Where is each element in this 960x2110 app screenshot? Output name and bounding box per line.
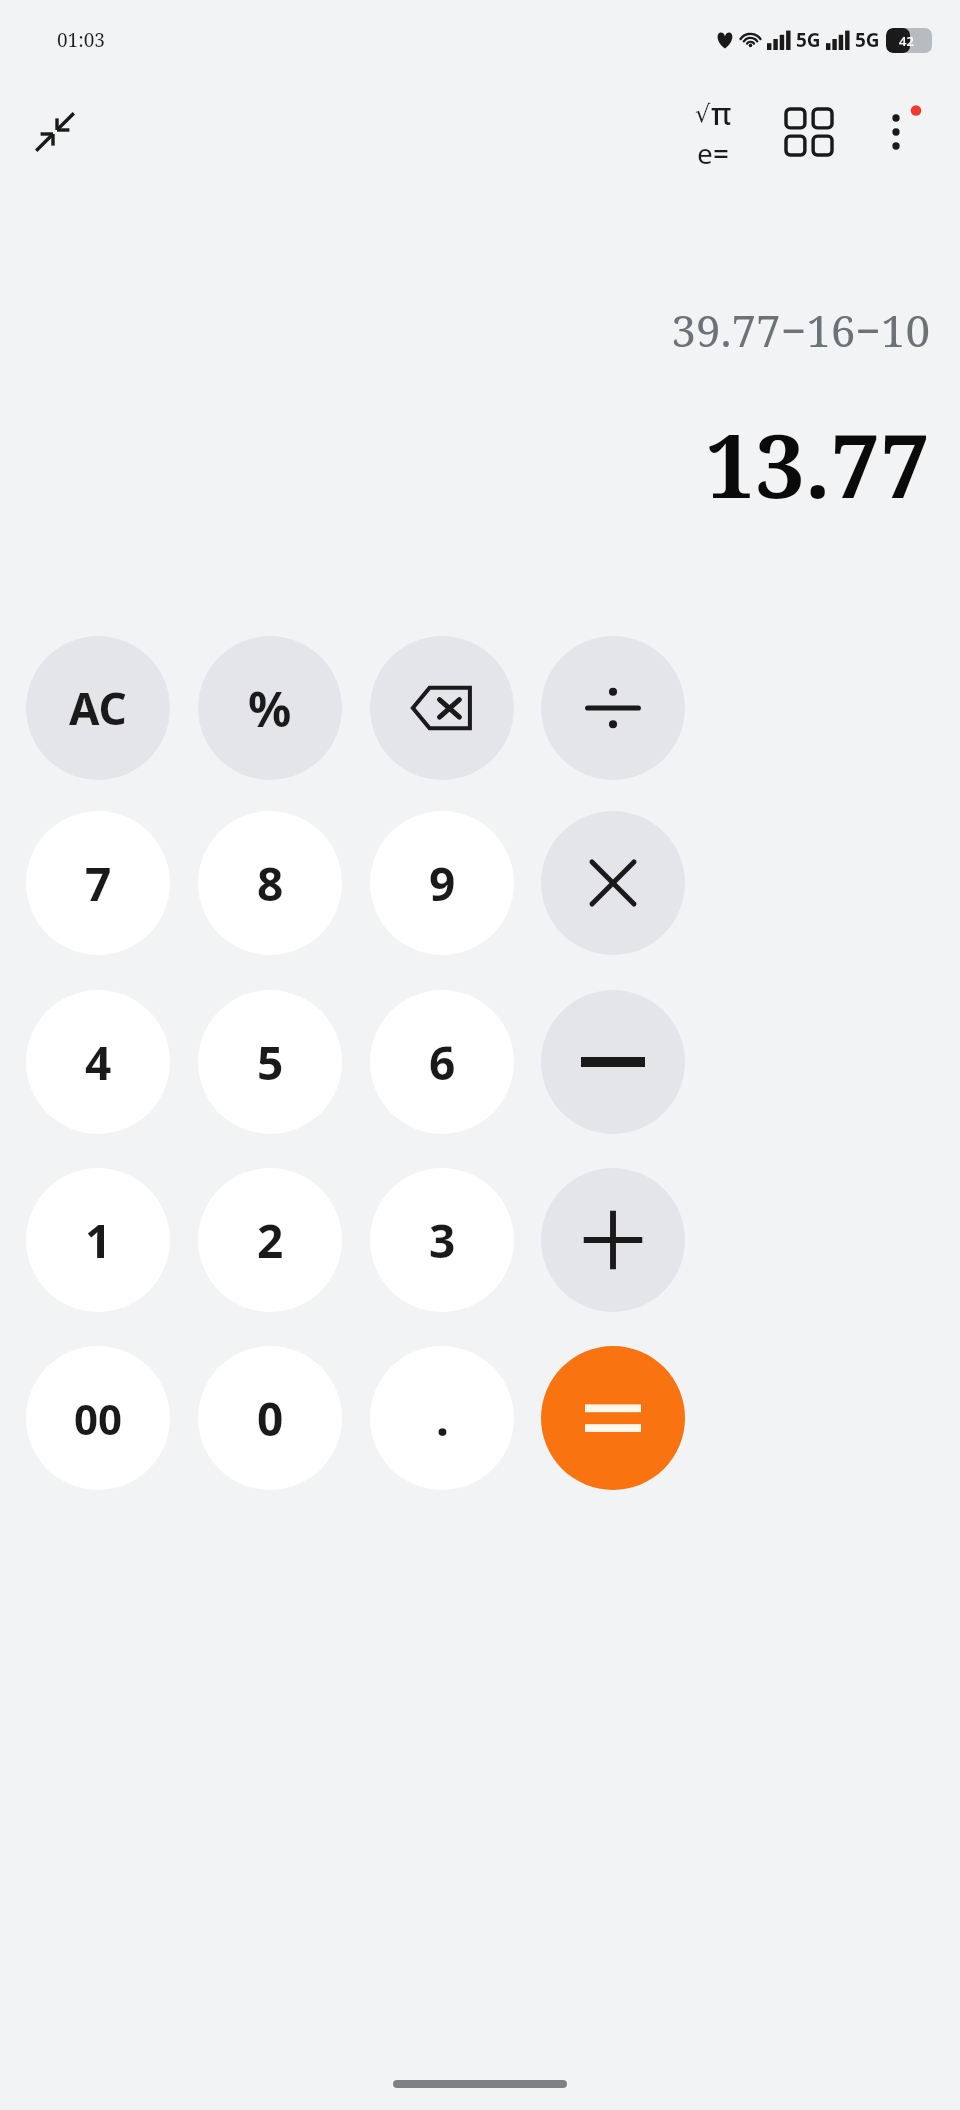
staticText: = — [713, 134, 730, 172]
staticText: 0 — [257, 1387, 284, 1450]
staticText: 42 — [899, 32, 914, 50]
staticText: 1 — [85, 1209, 112, 1272]
button[interactable]: Collapse — [22, 99, 88, 165]
staticText: 5G — [855, 27, 880, 53]
button[interactable]: Multiply — [541, 811, 685, 955]
staticText: 3 — [429, 1209, 456, 1272]
button[interactable]: 3 — [370, 1168, 514, 1312]
staticText: 6 — [429, 1031, 456, 1094]
staticText: 4 — [85, 1031, 112, 1094]
button[interactable]: 5 — [198, 990, 342, 1134]
button[interactable]: Divide — [541, 636, 685, 780]
staticText: 8 — [257, 852, 284, 915]
staticText: 00 — [74, 1390, 123, 1447]
button[interactable]: 7 — [26, 811, 170, 955]
staticText: 5 — [257, 1031, 284, 1094]
button[interactable]: 1 — [26, 1168, 170, 1312]
button[interactable]: History — [766, 89, 852, 175]
button[interactable]: Equals — [541, 1346, 685, 1490]
staticText: 2 — [257, 1209, 284, 1272]
button[interactable]: 9 — [370, 811, 514, 955]
staticText: 7 — [85, 852, 112, 915]
button[interactable]: 8 — [198, 811, 342, 955]
button[interactable]: More options — [856, 89, 942, 175]
staticText: 01:03 — [57, 27, 105, 53]
button[interactable]: 4 — [26, 990, 170, 1134]
button[interactable]: 2 — [198, 1168, 342, 1312]
staticText: 39.77−16−10 — [671, 300, 930, 360]
staticText: % — [248, 676, 292, 741]
staticText: . — [436, 1387, 449, 1450]
button[interactable]: Add — [541, 1168, 685, 1312]
button[interactable]: 00 — [26, 1346, 170, 1490]
button[interactable]: Scientific — [670, 89, 756, 175]
staticText: √ — [695, 100, 711, 128]
button[interactable]: % — [198, 636, 342, 780]
staticText: π — [711, 93, 732, 134]
staticText: 13.77 — [705, 404, 930, 524]
button[interactable]: Backspace — [370, 636, 514, 780]
button[interactable]: 6 — [370, 990, 514, 1134]
button[interactable]: AC — [26, 636, 170, 780]
button[interactable]: Subtract — [541, 990, 685, 1134]
staticText: 9 — [429, 852, 456, 915]
staticText: e — [697, 134, 713, 172]
staticText: AC — [69, 678, 127, 738]
staticText: 5G — [796, 27, 821, 53]
button[interactable]: . — [370, 1346, 514, 1490]
button[interactable]: 0 — [198, 1346, 342, 1490]
